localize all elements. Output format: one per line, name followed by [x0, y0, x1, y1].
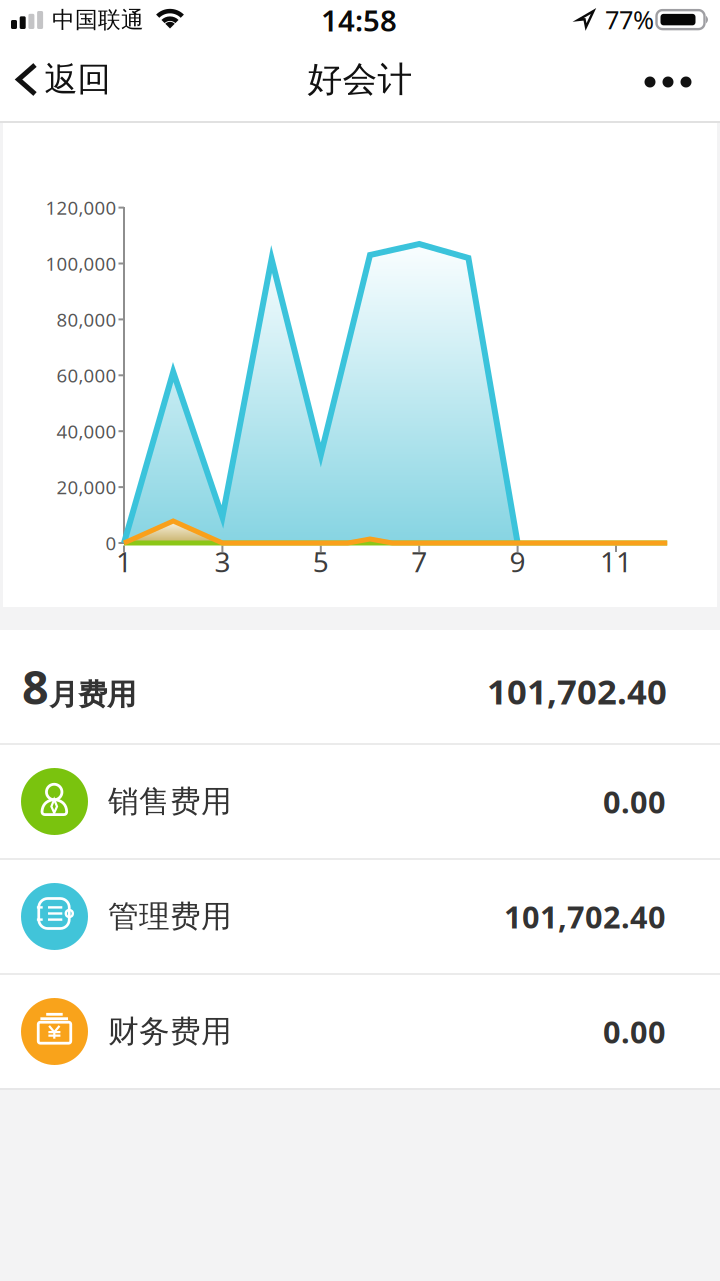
button[interactable]: More: [630, 57, 706, 107]
staticText: 销售费用: [108, 783, 232, 820]
button[interactable]: 销售费用: [0, 745, 720, 858]
staticText: 9: [510, 543, 526, 580]
button[interactable]: 管理费用: [0, 860, 720, 973]
staticText: 7: [411, 543, 427, 580]
staticText: 3: [214, 543, 230, 580]
staticText: 14:58: [321, 0, 397, 39]
staticText: 0: [105, 531, 116, 555]
button[interactable]: Back: [15, 59, 110, 100]
staticText: 80,000: [56, 307, 116, 332]
staticText: 100,000: [45, 251, 116, 276]
staticText: 管理费用: [108, 898, 232, 935]
staticText: 40,000: [56, 419, 116, 444]
staticText: 101,702.40: [504, 896, 666, 937]
staticText: 120,000: [45, 195, 116, 220]
staticText: 财务费用: [108, 1013, 232, 1050]
staticText: 8: [22, 655, 49, 717]
staticText: 60,000: [56, 363, 116, 388]
staticText: 101,702.40: [487, 668, 667, 714]
staticText: 5: [313, 543, 329, 580]
staticText: 77%: [605, 3, 654, 36]
staticText: 0.00: [603, 1011, 666, 1052]
button[interactable]: 财务费用: [0, 975, 720, 1088]
staticText: 20,000: [56, 475, 116, 499]
staticText: 中国联通: [52, 6, 144, 34]
staticText: 返回: [44, 59, 110, 100]
staticText: 0.00: [603, 781, 666, 822]
staticText: 11: [600, 543, 632, 580]
staticText: 月费用: [49, 677, 136, 713]
staticText: 1: [116, 543, 132, 580]
staticText: 好会计: [307, 58, 412, 101]
